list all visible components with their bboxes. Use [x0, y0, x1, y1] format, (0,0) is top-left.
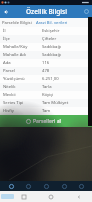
- staticText: Mevkii: [3, 92, 42, 98]
- staticText: 116: [42, 60, 50, 66]
- button[interactable]: Nav item 4: [74, 181, 88, 191]
- staticText: Özellik Bilgisi: [26, 7, 67, 16]
- staticText: Köyiçi: [42, 92, 54, 98]
- button[interactable]: Nav item 3: [57, 181, 71, 191]
- staticText: Mahalle/Köy: [3, 44, 42, 50]
- button[interactable]: İl: [0, 27, 92, 35]
- staticText: Sadıkbağı: [42, 52, 62, 58]
- staticText: Tarla: [42, 84, 52, 90]
- button[interactable]: Nav item 1: [21, 181, 35, 191]
- staticText: 6.251,00: [42, 76, 59, 82]
- button[interactable]: Back: [0, 5, 11, 18]
- staticText: Ada: [3, 60, 42, 66]
- button[interactable]: Mahalle Adı: [0, 51, 92, 59]
- staticText: Sertes Tipi: [3, 100, 42, 106]
- button[interactable]: Yüzölçümü: [0, 75, 92, 83]
- staticText: Mahalle Adı: [3, 52, 42, 58]
- staticText: Tam: [42, 108, 51, 114]
- button[interactable]: Nitelik: [0, 83, 92, 91]
- staticText: Nitelik: [3, 84, 42, 90]
- staticText: 478: [42, 68, 50, 74]
- button[interactable]: Ada: [0, 59, 92, 67]
- staticText: İl: [3, 28, 42, 34]
- staticText: Yüzölçümü: [3, 76, 42, 82]
- button[interactable]: Nav item 2: [39, 181, 53, 191]
- staticText: Eskişehir: [42, 28, 60, 34]
- staticText: Parselde Bilgisi: [2, 20, 32, 26]
- button[interactable]: Sertes Tipi: [0, 99, 92, 107]
- staticText: Hisfiy: [3, 108, 42, 114]
- staticText: Çifteler: [42, 36, 57, 42]
- button[interactable]: Parselde Bilgisi: [2, 18, 32, 27]
- button[interactable]: Parsel: [0, 67, 92, 75]
- button[interactable]: Back: [72, 191, 86, 202]
- button[interactable]: Hisfiy: [0, 107, 92, 115]
- staticText: Tam Mülkiyet: [42, 100, 69, 106]
- staticText: Parsel: [3, 68, 42, 74]
- staticText: Sadıkbağı: [42, 44, 62, 50]
- button[interactable]: Parselleri al: [0, 115, 92, 127]
- button[interactable]: More options: [81, 5, 92, 18]
- staticText: Parselleri al: [33, 118, 61, 125]
- button[interactable]: Keyboard: [1, 194, 14, 199]
- button[interactable]: Home: [44, 191, 58, 202]
- button[interactable]: Mahalle/Köy: [0, 43, 92, 51]
- staticText: Arazi Bil. verileri: [36, 20, 68, 26]
- button[interactable]: Mevkii: [0, 91, 92, 99]
- button[interactable]: Arazi Bil. verileri: [36, 18, 68, 27]
- button[interactable]: İlçe: [0, 35, 92, 43]
- button[interactable]: Nav item 0: [4, 181, 18, 191]
- staticText: İlçe: [3, 36, 42, 42]
- button[interactable]: Recents: [18, 191, 30, 202]
